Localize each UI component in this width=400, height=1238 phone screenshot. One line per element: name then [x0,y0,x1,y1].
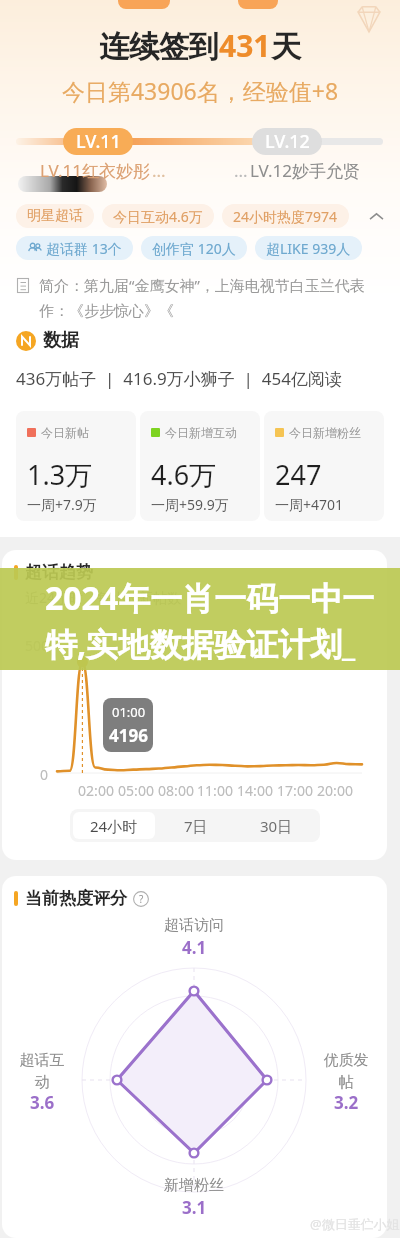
staticText: 4.6万 [151,456,217,493]
staticText: 17:00 [275,781,315,800]
staticText: 创作官 120人 [152,239,236,258]
staticText: 今日互动4.6万 [113,207,203,226]
staticText: 超LIKE 939人 [266,239,351,258]
button[interactable]: 24小时 [73,812,155,839]
staticText: 超话互动 [18,1051,66,1091]
staticText: 今日新增粉丝 [289,425,361,440]
staticText: 简介：第九届“金鹰女神”，上海电视节白玉兰代表作：《步步惊心》《 [39,275,392,320]
staticText: 3.1 [182,1196,207,1219]
button[interactable]: Info [133,891,149,907]
staticText: 明星超话 [27,207,83,225]
staticText: 02:00 [76,781,116,800]
staticText: 近24小时，每小时新帖数 [25,588,182,607]
staticText: LV.12妙手允贤 [250,159,360,182]
button[interactable]: 今日新帖 [16,411,136,521]
staticText: 特,实地数据验证计划_ [45,622,356,666]
staticText: 11:00 [195,781,235,800]
staticText: 超话趋势 [25,562,93,583]
staticText: LV.11红衣妙彤 [40,159,150,182]
button[interactable]: 超LIKE 939人 [255,236,362,260]
staticText: ... [152,159,166,182]
button[interactable]: 今日新增粉丝 [264,411,384,521]
button[interactable]: Collapse [364,204,388,228]
staticText: LV.11 [76,129,121,154]
staticText: 3.6 [30,1091,55,1114]
staticText: 今日新增互动 [165,425,237,440]
staticText: 24小时热度7974 [233,207,338,226]
staticText: 今日第43906名，经验值+8 [0,75,400,106]
staticText: 01:00 [112,703,146,721]
staticText: 一周+7.9万 [27,495,97,514]
staticText: 20:00 [315,781,355,800]
button[interactable]: LV.12 [252,128,322,155]
staticText: ... [234,159,248,182]
staticText: 2024年一肖一码一中一 [45,576,375,620]
button[interactable]: 明星超话 [16,204,94,228]
staticText: 431 [219,25,271,66]
button[interactable]: 今日新增互动 [140,411,260,521]
button[interactable]: 24小时热度7974 [222,204,349,228]
staticText: 当前热度评分 [25,888,127,909]
staticText: 4.1 [182,936,207,959]
staticText: 30日 [260,816,293,836]
staticText: 5000 [25,636,58,655]
staticText: 08:00 [156,781,196,800]
staticText: 14:00 [235,781,275,800]
staticText: 4196 [109,724,148,747]
staticText: ? [139,892,144,906]
staticText: 05:00 [116,781,156,800]
staticText: 数据 [43,329,79,352]
staticText: 0 [40,765,49,784]
staticText: 超话群 13个 [46,239,122,258]
staticText: 优质发帖 [322,1051,370,1091]
staticText: 436万帖子 | 416.9万小狮子 | 454亿阅读 [16,367,342,390]
button[interactable]: 今日互动4.6万 [102,204,214,228]
staticText: @微日垂伫小姐 [310,1215,400,1233]
staticText: 天 [271,28,301,66]
staticText: 一周+59.9万 [151,495,229,514]
staticText: 1.3万 [27,456,93,493]
button[interactable]: 创作官 120人 [141,236,247,260]
staticText: 超话访问 [164,916,224,935]
staticText: 今日新帖 [41,425,89,440]
staticText: 新增粉丝 [164,1176,224,1195]
staticText: 3.2 [334,1091,359,1114]
staticText: 24小时 [90,816,138,836]
staticText: 247 [275,456,322,493]
button[interactable]: 简介：第九届“金鹰女神”，上海电视节白玉兰代表作：《步步惊心》《 [16,275,392,320]
staticText: 7日 [184,816,208,836]
button[interactable]: LV.11 [63,128,133,155]
staticText: 连续签到 [99,28,219,66]
button[interactable]: 7日 [155,812,236,839]
staticText: 一周+4701 [275,495,344,514]
button[interactable]: 超话群 13个 [16,236,133,260]
button[interactable]: 30日 [236,812,317,839]
staticText: LV.12 [265,129,310,154]
